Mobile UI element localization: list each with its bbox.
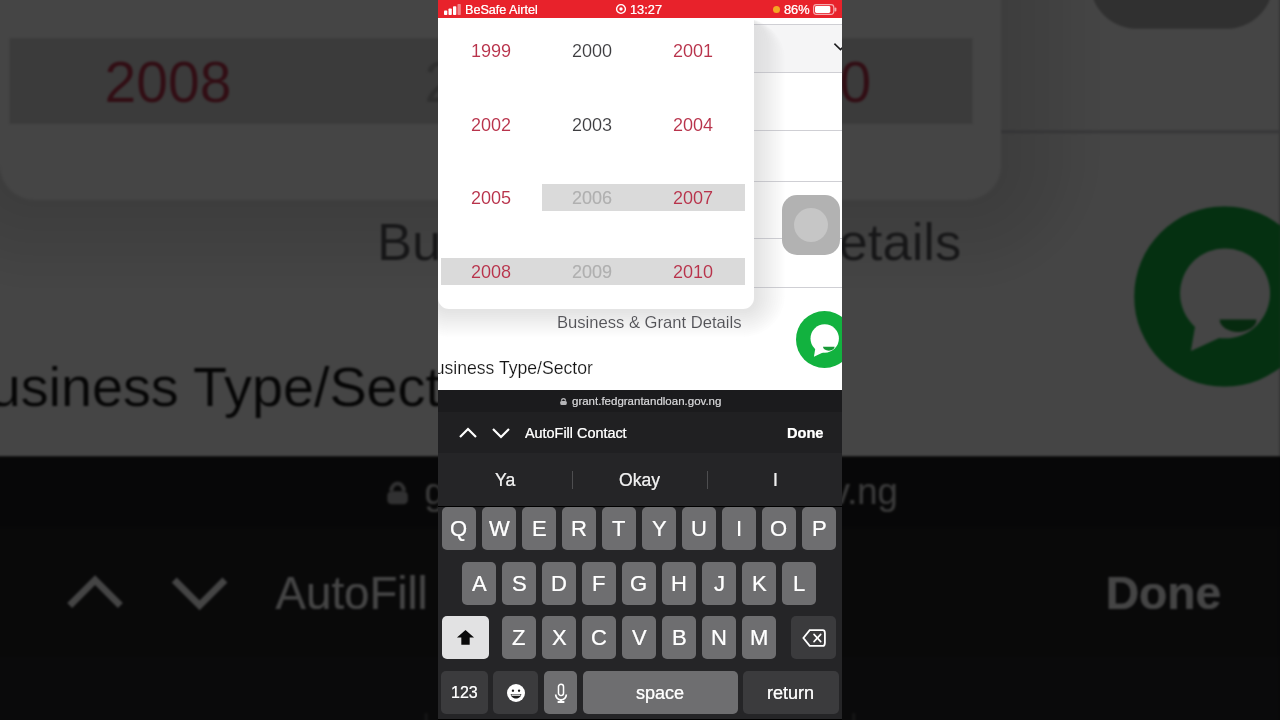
staticText: S: [512, 571, 527, 596]
button[interactable]: 2004: [652, 111, 734, 138]
staticText: X: [552, 625, 567, 650]
button[interactable]: N: [702, 616, 736, 659]
button[interactable]: Emoji: [493, 671, 538, 714]
button[interactable]: Chat on WhatsApp: [796, 311, 842, 368]
button[interactable]: 2000: [551, 37, 633, 64]
button[interactable]: 2008: [450, 258, 532, 285]
button[interactable]: F: [582, 562, 616, 605]
button[interactable]: E: [522, 507, 556, 550]
button[interactable]: 2006: [551, 184, 633, 211]
button[interactable]: Okay: [573, 453, 707, 506]
button[interactable]: J: [702, 562, 736, 605]
button[interactable]: Backspace: [791, 616, 836, 659]
staticText: J: [714, 571, 725, 596]
button[interactable]: 2008: [38, 38, 298, 124]
staticText: F: [592, 571, 606, 596]
button[interactable]: G: [622, 562, 656, 605]
button[interactable]: Shift: [442, 616, 489, 659]
staticText: Okay: [619, 470, 661, 490]
button[interactable]: L: [782, 562, 816, 605]
button[interactable]: 2002: [450, 111, 532, 138]
staticText: T: [612, 516, 626, 541]
button[interactable]: V: [622, 616, 656, 659]
staticText: A: [472, 571, 487, 596]
staticText: space: [636, 683, 685, 703]
staticText: 2003: [572, 115, 613, 135]
staticText: 1999: [471, 41, 512, 61]
button[interactable]: space: [583, 671, 738, 714]
button[interactable]: 2005: [450, 184, 532, 211]
button[interactable]: Next field: [487, 418, 514, 448]
staticText: C: [591, 625, 607, 650]
button[interactable]: 2009: [358, 38, 618, 124]
staticText: N: [711, 625, 727, 650]
staticText: Y: [652, 516, 667, 541]
staticText: O: [770, 516, 788, 541]
staticText: Ya: [495, 470, 516, 490]
staticText: U: [691, 516, 707, 541]
button[interactable]: H: [662, 562, 696, 605]
staticText: B: [672, 625, 687, 650]
button[interactable]: B: [662, 616, 696, 659]
button[interactable]: Dictate: [544, 671, 577, 714]
staticText: 2004: [673, 115, 714, 135]
button[interactable]: Done: [783, 421, 828, 445]
button[interactable]: D: [542, 562, 576, 605]
staticText: K: [752, 571, 767, 596]
button[interactable]: W: [482, 507, 516, 550]
button[interactable]: 2010: [678, 38, 938, 124]
button[interactable]: Okay: [428, 656, 852, 720]
staticText: I: [773, 470, 778, 490]
staticText: 2001: [673, 41, 714, 61]
staticText: Business & Grant Details: [557, 313, 742, 332]
button[interactable]: M: [742, 616, 776, 659]
button[interactable]: C: [582, 616, 616, 659]
button[interactable]: K: [742, 562, 776, 605]
button[interactable]: S: [502, 562, 536, 605]
staticText: E: [532, 516, 547, 541]
button[interactable]: 2007: [652, 184, 734, 211]
staticText: D: [551, 571, 567, 596]
staticText: AutoFill Contact: [276, 567, 599, 618]
button[interactable]: P: [802, 507, 836, 550]
staticText: Okay: [573, 710, 706, 720]
button[interactable]: R: [562, 507, 596, 550]
staticText: 2002: [471, 115, 512, 135]
button[interactable]: Ya: [438, 453, 572, 506]
button[interactable]: return: [743, 671, 839, 714]
staticText: grant.fedgrantandloan.gov.ng: [572, 395, 722, 408]
button[interactable]: Previous field: [454, 418, 481, 448]
button[interactable]: 2003: [551, 111, 633, 138]
staticText: 2006: [572, 188, 613, 208]
button[interactable]: Next field: [155, 545, 241, 640]
staticText: 13:27: [630, 2, 663, 16]
button[interactable]: X: [542, 616, 576, 659]
button[interactable]: Y: [642, 507, 676, 550]
button[interactable]: 2010: [652, 258, 734, 285]
staticText: M: [750, 625, 769, 650]
staticText: 2010: [673, 262, 714, 282]
button[interactable]: 2009: [551, 258, 633, 285]
button[interactable]: Previous field: [51, 545, 136, 640]
button[interactable]: 123: [441, 671, 488, 714]
button[interactable]: T: [602, 507, 636, 550]
button[interactable]: 1999: [450, 37, 532, 64]
button[interactable]: I: [708, 453, 842, 506]
button[interactable]: Done: [1093, 555, 1236, 631]
button[interactable]: A: [462, 562, 496, 605]
button[interactable]: Z: [502, 616, 536, 659]
staticText: 2009: [572, 262, 613, 282]
button[interactable]: 2001: [652, 37, 734, 64]
staticText: Done: [1106, 567, 1223, 618]
button[interactable]: U: [682, 507, 716, 550]
button[interactable]: Chat on WhatsApp: [1134, 206, 1280, 387]
staticText: Business & Grant Details: [377, 213, 963, 273]
button[interactable]: O: [762, 507, 796, 550]
button[interactable]: I: [722, 507, 756, 550]
button[interactable]: Q: [442, 507, 476, 550]
staticText: 2000: [572, 41, 613, 61]
